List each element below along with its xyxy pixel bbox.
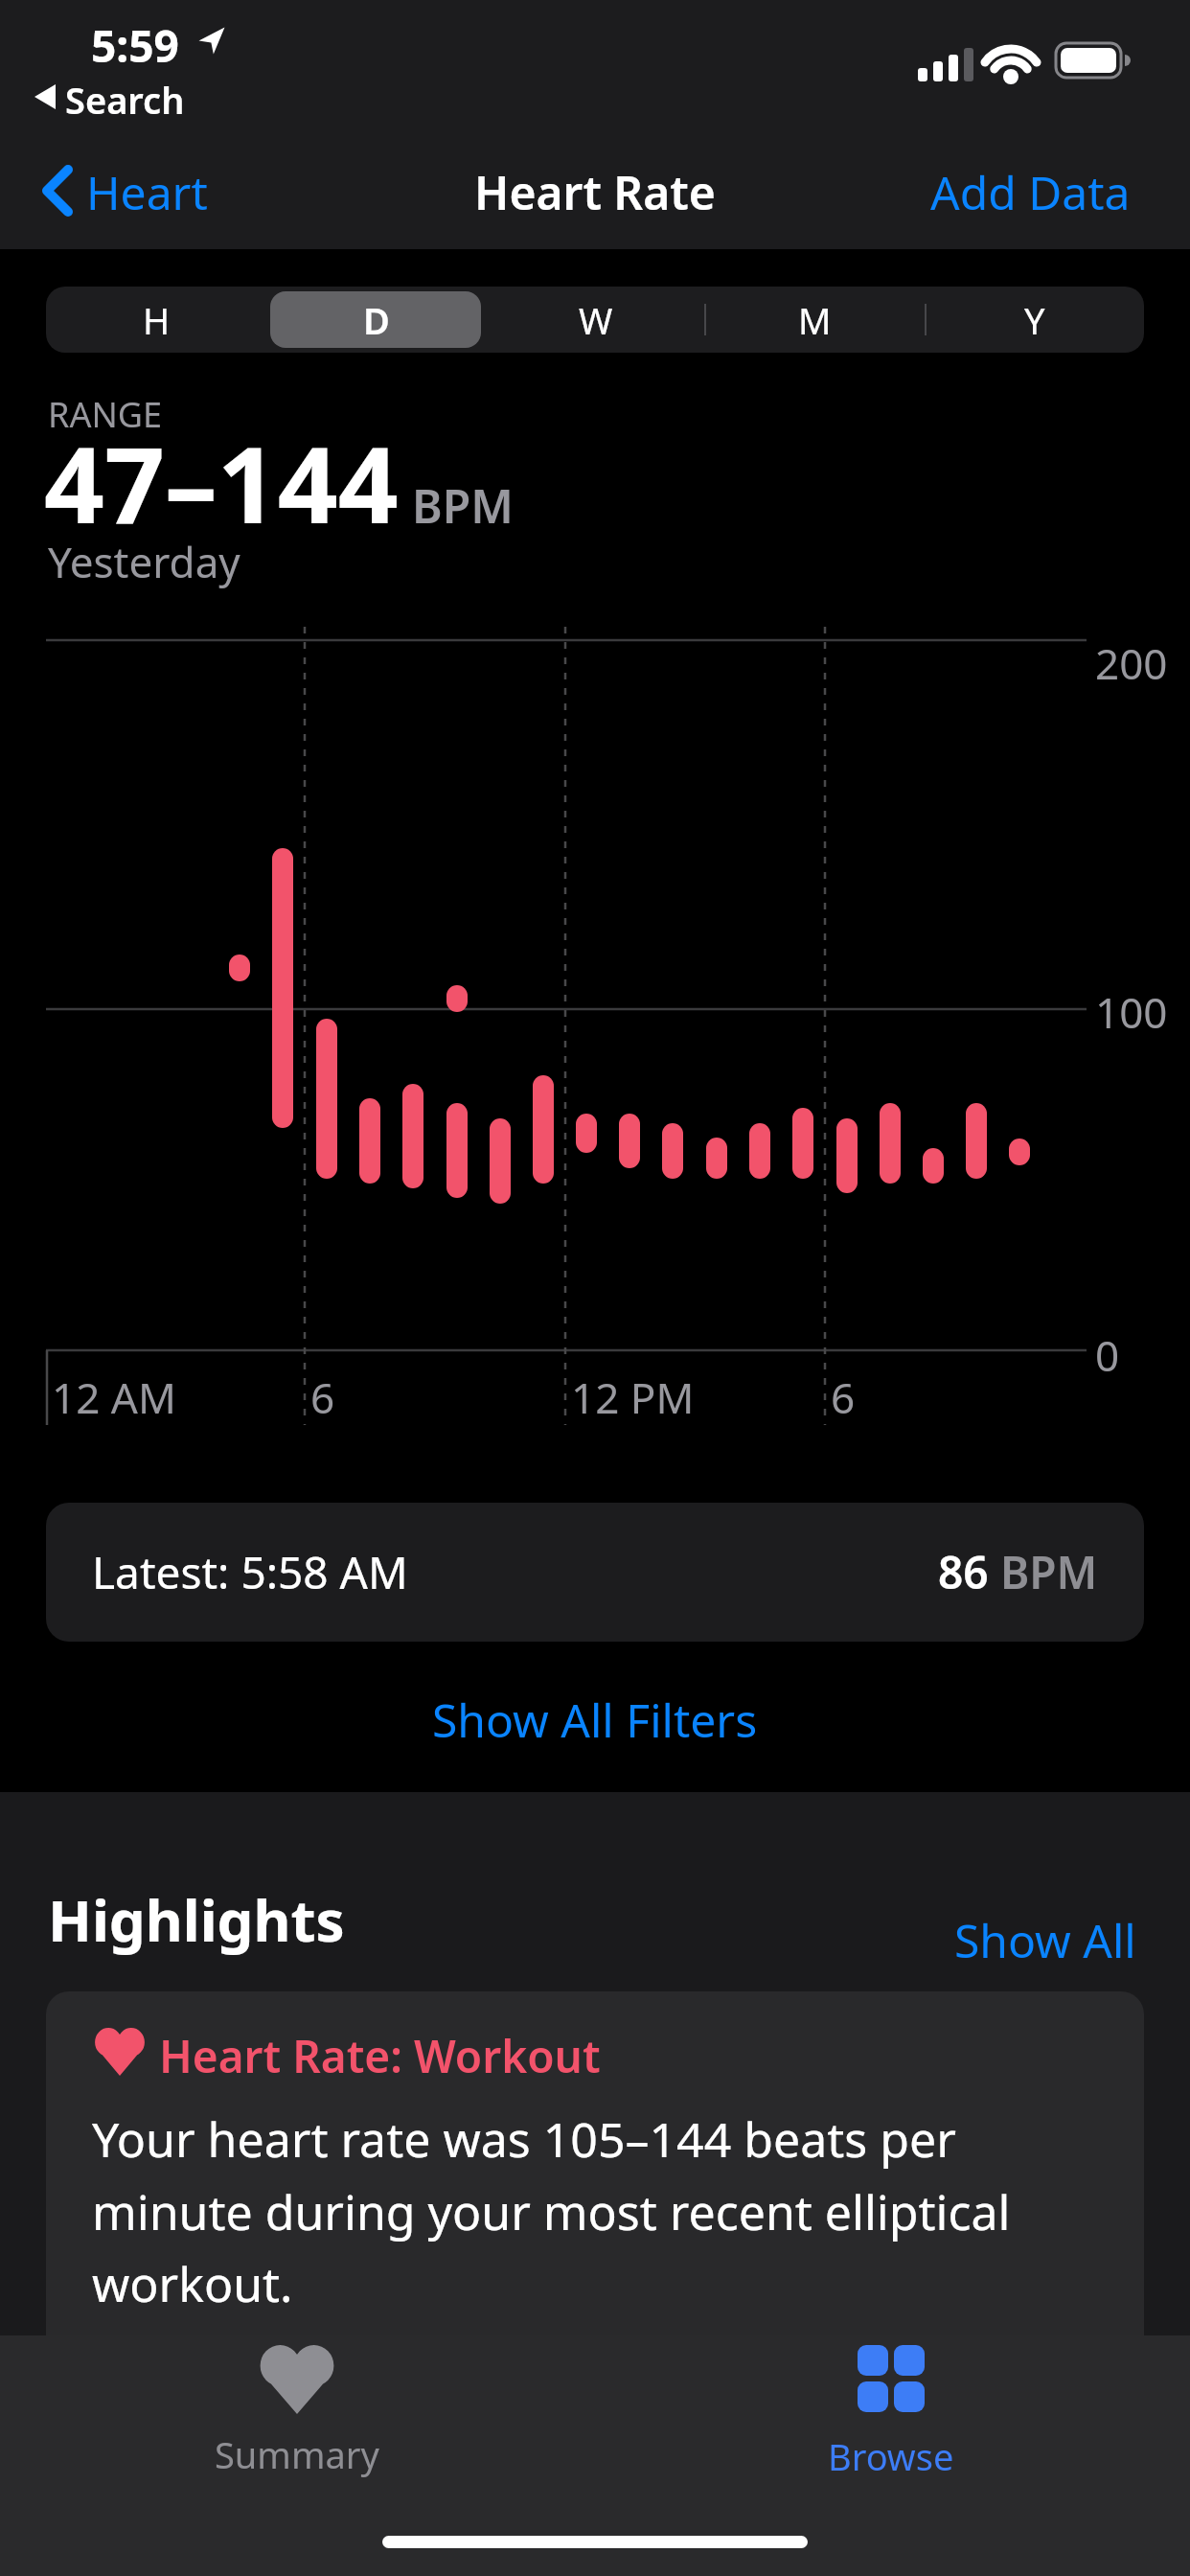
button[interactable]: Y bbox=[925, 287, 1144, 353]
staticText: 0 bbox=[1095, 1326, 1120, 1384]
staticText: 6 bbox=[831, 1368, 856, 1426]
staticText: Heart Rate bbox=[0, 161, 1190, 223]
staticText: H bbox=[143, 295, 171, 345]
staticText: 12 AM bbox=[52, 1368, 176, 1426]
staticText: 200 bbox=[1095, 634, 1168, 692]
staticText: Heart Rate: Workout bbox=[159, 2026, 601, 2086]
staticText: 86 bbox=[938, 1542, 989, 1602]
button[interactable] bbox=[42, 165, 71, 217]
staticText: Yesterday bbox=[48, 533, 240, 590]
staticText: M bbox=[798, 295, 832, 345]
button[interactable]: Heart bbox=[86, 161, 208, 223]
staticText: Browse bbox=[828, 2431, 954, 2481]
button[interactable]: M bbox=[705, 287, 925, 353]
button[interactable]: Show All bbox=[954, 1909, 1136, 1971]
staticText: Y bbox=[1024, 295, 1045, 345]
staticText: Latest: 5:58 AM bbox=[92, 1542, 408, 1602]
staticText: Highlights bbox=[48, 1880, 345, 1959]
staticText: BPM bbox=[1000, 1542, 1098, 1602]
staticText: 12 PM bbox=[571, 1368, 695, 1426]
staticText: Your heart rate was 105–144 beats per mi… bbox=[92, 2106, 1011, 2316]
button[interactable]: Show All Filters bbox=[432, 1689, 758, 1751]
button[interactable]: Heart Rate: Workout bbox=[46, 1991, 1144, 2576]
staticText: D bbox=[363, 295, 390, 345]
staticText: Search bbox=[65, 75, 185, 125]
staticText: W bbox=[579, 295, 613, 345]
staticText: 5:59 bbox=[91, 15, 179, 76]
button[interactable]: W bbox=[486, 287, 705, 353]
button[interactable]: Summary bbox=[211, 2345, 383, 2518]
button[interactable]: D bbox=[266, 287, 486, 353]
button[interactable]: Latest: 5:58 AM bbox=[92, 1503, 1098, 1642]
button[interactable]: Browse bbox=[805, 2345, 977, 2518]
staticText: BPM bbox=[412, 474, 514, 537]
staticText: RANGE bbox=[48, 391, 162, 438]
button[interactable]: Add Data bbox=[930, 161, 1131, 223]
staticText: 6 bbox=[310, 1368, 335, 1426]
staticText: 47–144 bbox=[44, 410, 399, 554]
staticText: Summary bbox=[215, 2429, 379, 2479]
button[interactable]: H bbox=[46, 287, 266, 353]
staticText: 100 bbox=[1095, 983, 1168, 1041]
